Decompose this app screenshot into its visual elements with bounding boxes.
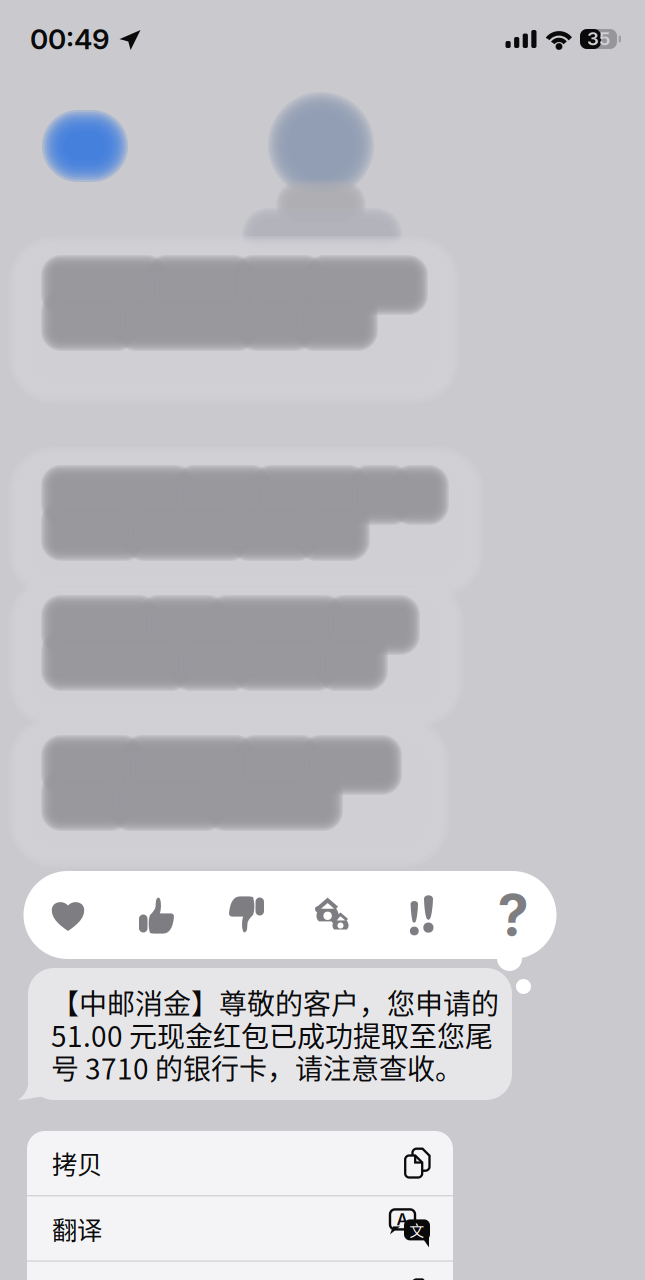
staticText: 文 [409,1219,424,1240]
button[interactable]: 拷贝 [27,1131,453,1195]
staticText: 【中邮消金】尊敬的客户，您申请的 [51,982,499,1022]
staticText: 51.00 元现金红包已成功提取至您尾 [51,1014,493,1055]
staticText: 35 [587,27,610,50]
staticText: 号 3710 的银行卡，请注意查收。 [51,1047,463,1088]
button[interactable]: Dislike [201,871,290,959]
button[interactable]: Question [468,871,557,959]
button[interactable]: Exclaim [379,871,468,959]
staticText: ? [497,881,528,949]
staticText: A [396,1210,408,1229]
button[interactable]: 翻译 [27,1196,453,1260]
staticText: 翻译 [52,1210,102,1247]
button[interactable]: Love [23,871,112,959]
staticText: 00:49 [30,22,110,56]
button[interactable]: 朗读 [27,1262,453,1280]
staticText: 拷贝 [52,1145,102,1181]
button[interactable]: Laugh [290,871,379,959]
button[interactable]: Like [112,871,201,959]
